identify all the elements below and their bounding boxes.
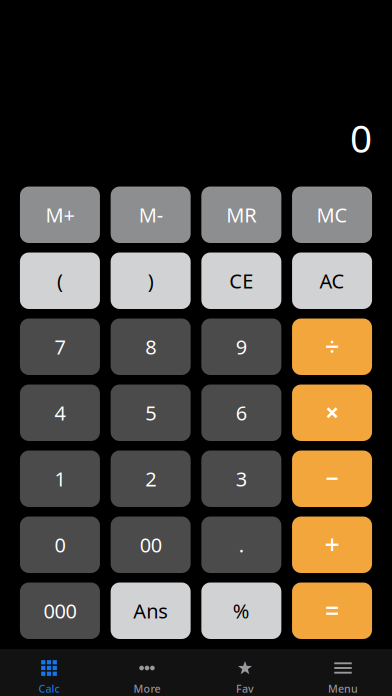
button[interactable]: Divide — [292, 318, 372, 375]
button[interactable]: ) — [111, 252, 191, 309]
button[interactable]: Ans — [111, 582, 191, 639]
button[interactable]: 2 — [111, 450, 191, 507]
staticText: M- — [139, 201, 163, 228]
button[interactable]: Menu — [294, 649, 392, 696]
staticText: ) — [148, 267, 154, 294]
staticText: 4 — [54, 399, 65, 426]
button[interactable]: 000 — [20, 582, 100, 639]
button[interactable]: 5 — [111, 384, 191, 441]
button[interactable]: Plus — [292, 516, 372, 573]
staticText: . — [239, 531, 244, 558]
staticText: M+ — [45, 201, 74, 228]
staticText: 7 — [54, 333, 65, 360]
staticText: MR — [226, 201, 256, 228]
button[interactable]: 3 — [201, 450, 281, 507]
button[interactable]: . — [201, 516, 281, 573]
staticText: 1 — [54, 465, 65, 492]
staticText: CE — [229, 267, 253, 294]
staticText: 0 — [350, 112, 372, 163]
staticText: 2 — [145, 465, 156, 492]
button[interactable]: 6 — [201, 384, 281, 441]
button[interactable]: Calc — [0, 649, 98, 696]
button[interactable]: M- — [111, 186, 191, 243]
button[interactable]: 00 — [111, 516, 191, 573]
staticText: 6 — [236, 399, 247, 426]
staticText: ( — [57, 267, 63, 294]
staticText: 00 — [140, 531, 162, 558]
button[interactable]: Minus — [292, 450, 372, 507]
button[interactable]: AC — [292, 252, 372, 309]
staticText: MC — [317, 201, 348, 228]
button[interactable]: Multiply — [292, 384, 372, 441]
button[interactable]: 0 — [20, 516, 100, 573]
button[interactable]: Equals — [292, 582, 372, 639]
staticText: 0 — [54, 531, 65, 558]
staticText: 000 — [43, 597, 76, 624]
staticText: More — [133, 681, 160, 696]
staticText: Fav — [236, 681, 254, 696]
button[interactable]: Fav — [196, 649, 294, 696]
staticText: Calc — [38, 681, 59, 696]
staticText: 9 — [236, 333, 247, 360]
button[interactable]: ( — [20, 252, 100, 309]
button[interactable]: 4 — [20, 384, 100, 441]
staticText: Menu — [328, 681, 358, 696]
staticText: 8 — [145, 333, 156, 360]
button[interactable]: M+ — [20, 186, 100, 243]
button[interactable]: MC — [292, 186, 372, 243]
button[interactable]: More — [98, 649, 196, 696]
staticText: 3 — [236, 465, 247, 492]
button[interactable]: 1 — [20, 450, 100, 507]
staticText: Ans — [133, 597, 168, 624]
button[interactable]: 8 — [111, 318, 191, 375]
staticText: 5 — [145, 399, 156, 426]
button[interactable]: % — [201, 582, 281, 639]
button[interactable]: 9 — [201, 318, 281, 375]
staticText: % — [233, 597, 250, 624]
button[interactable]: 7 — [20, 318, 100, 375]
staticText: AC — [320, 267, 345, 294]
button[interactable]: MR — [201, 186, 281, 243]
button[interactable]: CE — [201, 252, 281, 309]
